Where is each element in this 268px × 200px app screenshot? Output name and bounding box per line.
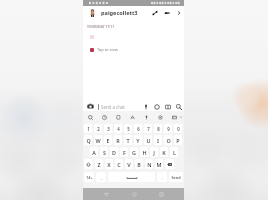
button[interactable]: V <box>125 159 133 169</box>
button[interactable]: W <box>94 135 102 145</box>
button[interactable]: GIF <box>175 103 183 111</box>
button[interactable]: I <box>154 135 162 145</box>
staticText: 5 <box>127 126 130 132</box>
button[interactable]: 1#+ <box>84 172 94 182</box>
button[interactable]: F <box>120 147 128 157</box>
button[interactable]: Search <box>86 113 94 121</box>
button[interactable]: K <box>160 147 168 157</box>
button[interactable]: 5 <box>124 124 132 133</box>
staticText: J <box>153 149 155 156</box>
button[interactable]: R <box>114 135 122 145</box>
button[interactable]: Camera <box>87 103 94 110</box>
button[interactable]: Profile photo <box>90 9 95 17</box>
staticText: 2 <box>97 126 100 132</box>
staticText: Send a chat <box>101 104 125 110</box>
staticText: Z <box>97 161 101 168</box>
button[interactable]: C <box>115 159 123 169</box>
staticText: THURSDAY 17:11 <box>87 24 115 29</box>
button[interactable]: Audio call <box>151 9 159 17</box>
staticText: L <box>173 149 176 156</box>
button[interactable]: paigecollett3 <box>101 9 138 17</box>
button[interactable]: O <box>164 135 172 145</box>
button[interactable]: Expand toolbar <box>178 114 184 120</box>
button[interactable]: Home <box>129 189 139 199</box>
button[interactable]: . <box>157 172 167 182</box>
staticText: T <box>126 137 130 144</box>
staticText: X <box>107 161 111 168</box>
button[interactable]: 6 <box>134 124 142 133</box>
button[interactable]: Settings <box>156 113 164 121</box>
button[interactable]: 1 <box>84 124 92 133</box>
button[interactable]: T <box>124 135 132 145</box>
button[interactable]: Key <box>165 159 174 169</box>
staticText: H <box>142 149 147 156</box>
button[interactable]: S <box>100 147 108 157</box>
button[interactable]: B <box>135 159 143 169</box>
button[interactable]: J <box>150 147 158 157</box>
button[interactable]: A <box>90 147 98 157</box>
button[interactable]: 7 <box>144 124 152 133</box>
button[interactable]: 4 <box>114 124 122 133</box>
button[interactable]: Stickers <box>153 103 161 111</box>
staticText: G <box>132 149 136 156</box>
button[interactable]: U <box>144 135 152 145</box>
staticText: F <box>123 149 126 156</box>
staticText: B <box>137 161 141 168</box>
button[interactable]: 2 <box>94 124 102 133</box>
staticText: 6 <box>137 126 140 132</box>
button[interactable]: Y <box>134 135 142 145</box>
staticText: 4 <box>117 126 120 132</box>
button[interactable]: Gallery <box>164 103 172 111</box>
button[interactable]: 8 <box>154 124 162 133</box>
button[interactable]: Voice message <box>142 103 150 111</box>
button[interactable]: X <box>105 159 113 169</box>
staticText: , <box>101 175 102 180</box>
button[interactable]: Send <box>169 172 183 182</box>
staticText: A <box>92 149 96 156</box>
staticText: Send <box>171 175 181 180</box>
button[interactable]: Q <box>84 135 92 145</box>
button[interactable]: Emoji <box>100 113 108 121</box>
button[interactable]: , <box>96 172 106 182</box>
staticText: N <box>147 161 152 168</box>
button[interactable]: G <box>130 147 138 157</box>
staticText: S <box>103 149 106 156</box>
button[interactable]: Back <box>101 189 111 199</box>
staticText: P <box>176 137 180 144</box>
staticText: U <box>146 137 151 144</box>
button[interactable]: P <box>174 135 182 145</box>
button[interactable]: Recents <box>156 189 166 199</box>
button[interactable]: D <box>110 147 118 157</box>
staticText: 1 <box>87 126 90 132</box>
button[interactable]: H <box>140 147 148 157</box>
staticText: K <box>162 149 166 156</box>
staticText: . <box>162 175 163 180</box>
staticText: 9 <box>167 126 170 132</box>
staticText: 3 <box>107 126 110 132</box>
button[interactable]: Translate <box>128 113 136 121</box>
staticText: 8 <box>157 126 160 132</box>
button[interactable]: Tap to view <box>90 47 118 52</box>
button[interactable]: E <box>104 135 112 145</box>
button[interactable]: Stickers <box>114 113 122 121</box>
staticText: Y <box>136 137 140 144</box>
staticText: V <box>127 161 131 168</box>
staticText: M <box>156 161 162 168</box>
button[interactable]: Video call <box>163 9 171 17</box>
button[interactable]: N <box>145 159 153 169</box>
staticText: D <box>112 149 116 156</box>
button[interactable]: Space <box>108 172 155 182</box>
button[interactable]: 9 <box>164 124 172 133</box>
button[interactable]: Voice input <box>142 113 150 121</box>
button[interactable]: 0 <box>174 124 182 133</box>
staticText: E <box>106 137 110 144</box>
staticText: O <box>166 137 171 144</box>
staticText: C <box>117 161 121 168</box>
button[interactable]: Key <box>84 159 93 169</box>
button[interactable]: M <box>155 159 163 169</box>
button[interactable]: Themes <box>170 113 178 121</box>
button[interactable]: L <box>170 147 178 157</box>
button[interactable]: More <box>175 9 183 17</box>
button[interactable]: 3 <box>104 124 112 133</box>
button[interactable]: Z <box>95 159 103 169</box>
